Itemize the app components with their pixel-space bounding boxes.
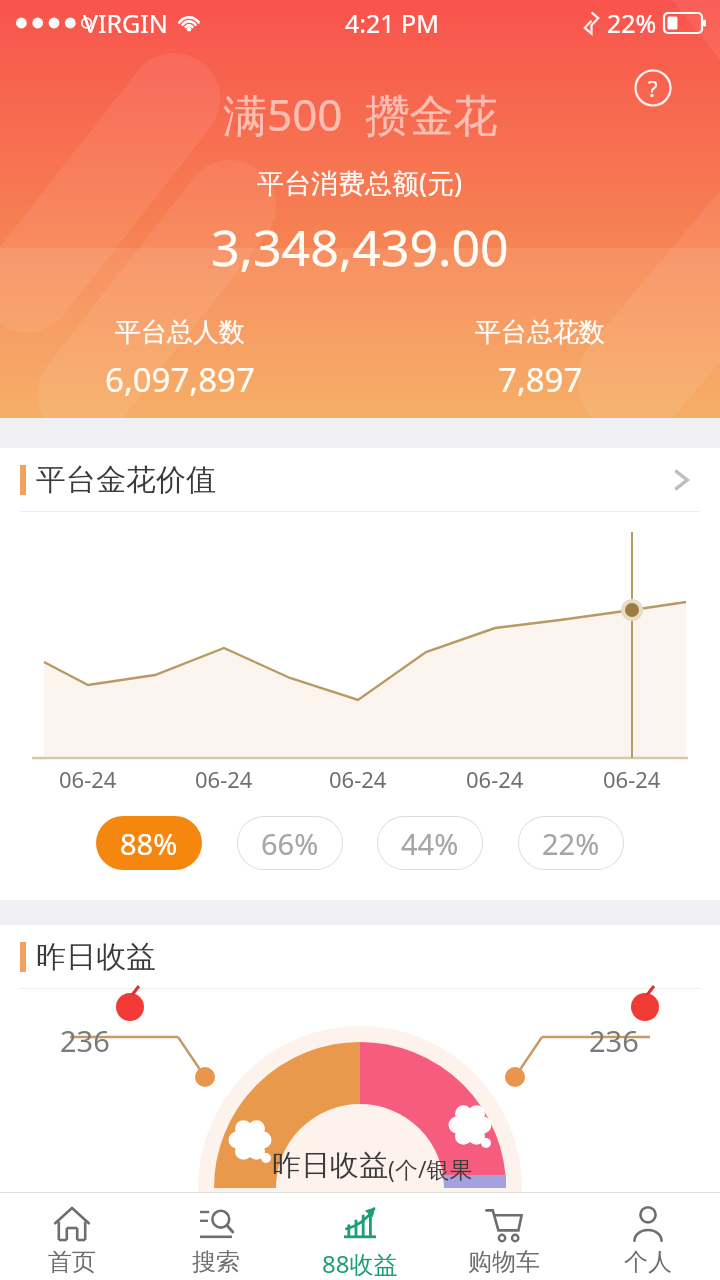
button[interactable]: 88收益 [288,1193,432,1280]
staticText: 6,097,897 [105,357,255,402]
staticText: 06-24 [195,764,253,794]
staticText: 个人 [624,1247,672,1277]
button[interactable]: 88% [96,816,202,870]
staticText: 满500 攒金花 [223,84,498,144]
staticText: 236 [60,1021,110,1060]
staticText: 首页 [48,1247,96,1277]
staticText: 236 [589,1021,639,1060]
button[interactable]: 22% [518,816,624,870]
staticText: 平台总人数 [115,316,245,349]
staticText: 3,348,439.00 [211,213,509,281]
staticText: 购物车 [468,1247,540,1277]
staticText: 昨日收益 [272,1147,388,1184]
button[interactable]: 44% [377,816,483,870]
staticText: 88收益 [322,1247,398,1280]
staticText: 44% [401,824,459,863]
staticText: 66% [261,824,319,863]
staticText: 平台总花数 [475,316,605,349]
button[interactable]: 个人 [576,1193,720,1280]
staticText: 06-24 [59,764,117,794]
staticText: 平台消费总额(元) [257,164,463,201]
button[interactable]: 66% [237,816,343,870]
staticText: 06-24 [466,764,524,794]
staticText: 06-24 [329,764,387,794]
staticText: 22% [542,824,600,863]
staticText: 7,897 [498,357,583,402]
staticText: (个/银果 [388,1153,473,1184]
button[interactable]: 搜索 [144,1193,288,1280]
button[interactable]: 购物车 [432,1193,576,1280]
button[interactable]: Help [631,66,675,110]
staticText: 22% [607,6,657,40]
staticText: 搜索 [192,1247,240,1277]
staticText: 88% [120,824,178,863]
button[interactable]: 平台金花价值 [0,448,720,512]
staticText: ? [648,73,658,103]
staticText: 06-24 [603,764,661,794]
staticText: 昨日收益 [36,938,156,976]
staticText: 平台金花价值 [36,461,216,499]
button[interactable]: 昨日收益 [0,925,720,989]
staticText: 4:21 PM [345,6,439,40]
button[interactable]: 首页 [0,1193,144,1280]
staticText: VIRGIN [83,6,168,40]
